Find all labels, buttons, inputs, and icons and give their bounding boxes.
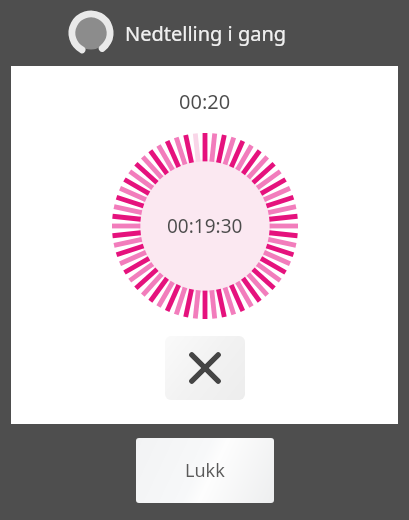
staticText: Lukk xyxy=(185,458,225,483)
staticText: 00:19:30 xyxy=(167,213,243,239)
other: Pågår xyxy=(68,10,114,56)
staticText: Nedtelling i gang xyxy=(125,20,287,47)
staticText: 00:20 xyxy=(179,88,231,115)
button[interactable]: Avbryt xyxy=(165,336,245,400)
button[interactable]: Lukk xyxy=(136,438,274,503)
